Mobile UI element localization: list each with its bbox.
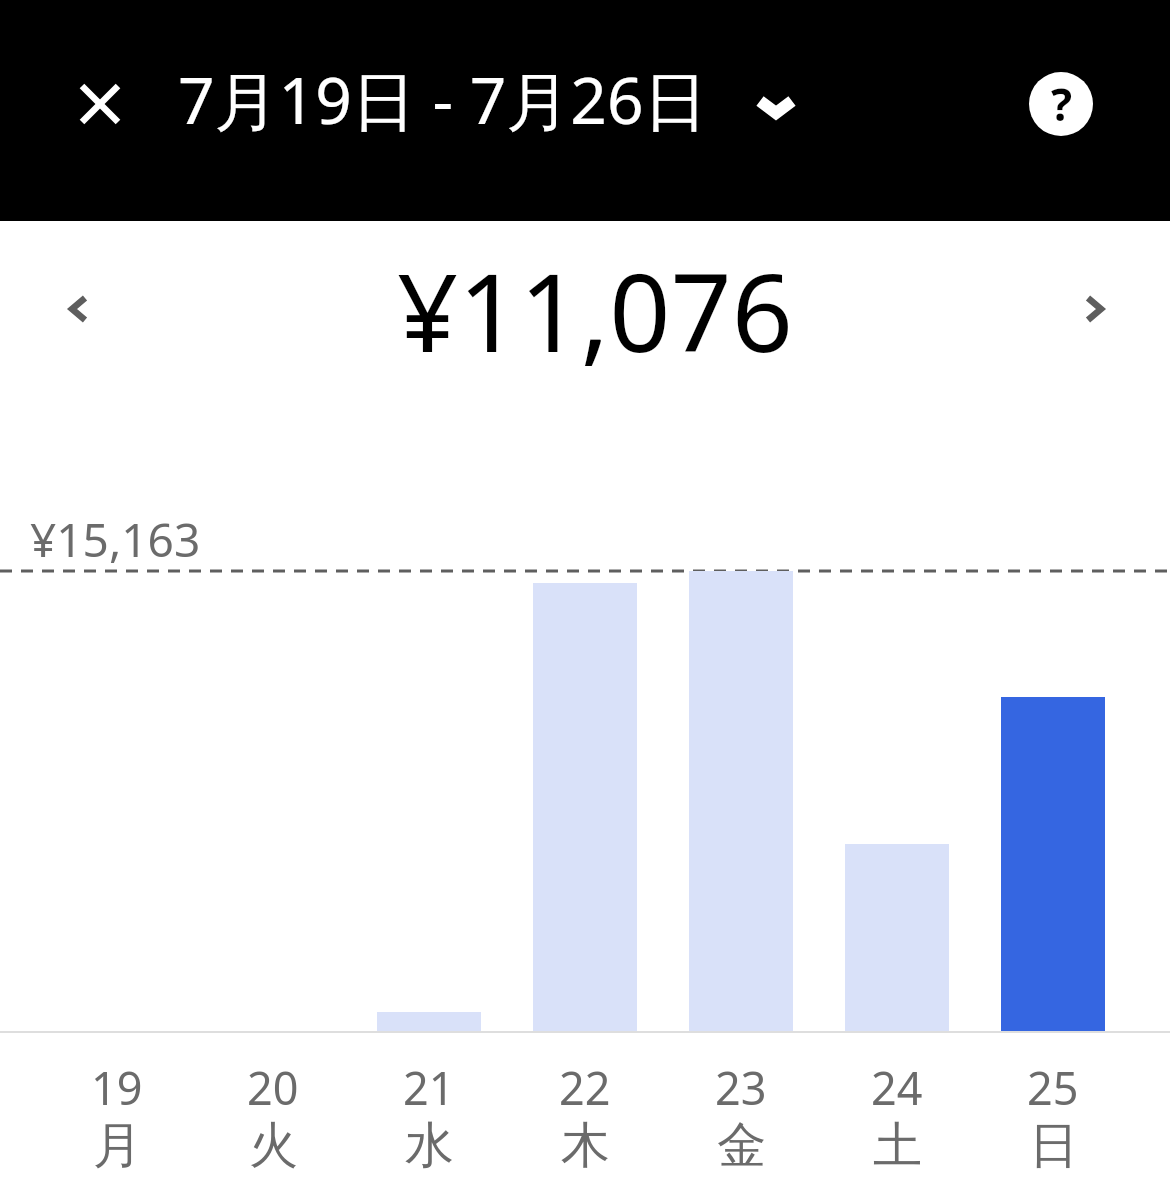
button[interactable]: 24 xyxy=(819,1045,975,1184)
staticText: 23 xyxy=(715,1057,767,1118)
staticText: 金 xyxy=(717,1115,766,1177)
staticText: 水 xyxy=(405,1115,454,1177)
staticText: 19 xyxy=(91,1057,143,1118)
button[interactable]: 21 xyxy=(351,1045,507,1184)
button[interactable] xyxy=(1058,273,1130,345)
staticText: 25 xyxy=(1027,1057,1079,1118)
staticText: 木 xyxy=(561,1115,610,1177)
button[interactable]: ? xyxy=(1029,72,1093,136)
button[interactable]: 19 xyxy=(39,1045,195,1184)
staticText: 20 xyxy=(247,1057,299,1118)
button[interactable] xyxy=(56,60,144,148)
staticText: 月 xyxy=(93,1115,142,1177)
button[interactable]: 22 xyxy=(507,1045,663,1184)
staticText: 21 xyxy=(403,1057,455,1118)
button[interactable]: 25 xyxy=(975,1045,1131,1184)
button[interactable]: 23 xyxy=(663,1045,819,1184)
button[interactable]: 20 xyxy=(195,1045,351,1184)
staticText: 24 xyxy=(871,1057,923,1118)
staticText: ¥15,163 xyxy=(30,508,201,571)
staticText: ¥11,076 xyxy=(397,238,793,384)
staticText: 日 xyxy=(1029,1115,1078,1177)
staticText: ? xyxy=(1051,74,1072,134)
button[interactable] xyxy=(42,273,114,345)
staticText: 火 xyxy=(249,1115,298,1177)
staticText: 7月19日 - 7月26日 xyxy=(178,56,708,143)
button[interactable]: 7月19日 - 7月26日 xyxy=(178,0,792,198)
staticText: 土 xyxy=(873,1115,922,1177)
staticText: 22 xyxy=(559,1057,611,1118)
